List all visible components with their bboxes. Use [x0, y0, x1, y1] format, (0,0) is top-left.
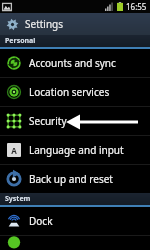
- button[interactable]: Location services: [0, 78, 150, 106]
- other: Accounts and sync: [7, 56, 21, 70]
- button[interactable]: Dock: [0, 207, 150, 235]
- staticText: Back up and reset: [29, 172, 113, 186]
- staticText: Accounts and sync: [29, 56, 116, 70]
- other: Language and input: [7, 143, 21, 157]
- staticText: System: [5, 194, 31, 204]
- other: Location services: [7, 85, 21, 99]
- staticText: A: [11, 145, 17, 156]
- button[interactable]: Accounts and sync: [0, 49, 150, 77]
- staticText: Dock: [29, 214, 53, 228]
- staticText: 16:55: [126, 1, 147, 12]
- staticText: Settings: [25, 17, 64, 31]
- staticText: Security: [29, 114, 67, 128]
- button[interactable]: Back up and reset: [0, 165, 150, 193]
- staticText: Language and input: [29, 143, 124, 157]
- other: Security: [7, 114, 21, 128]
- button[interactable]: Language and input: [0, 136, 150, 164]
- button[interactable]: Security: [0, 107, 150, 135]
- button[interactable]: More settings: [0, 236, 150, 250]
- other: Dock: [7, 214, 21, 228]
- button[interactable]: Settings: [0, 13, 150, 35]
- other: Back up and reset: [7, 172, 21, 186]
- staticText: Personal: [5, 36, 36, 46]
- staticText: Location services: [29, 85, 110, 99]
- other: More settings: [7, 236, 21, 250]
